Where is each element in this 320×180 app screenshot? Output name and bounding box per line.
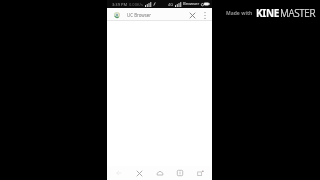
button[interactable]: Stop xyxy=(131,166,147,180)
staticText: Made with xyxy=(226,10,253,17)
staticText: 0.00K/s xyxy=(129,2,143,7)
button[interactable]: More options xyxy=(200,10,210,20)
staticText: MASTER xyxy=(280,6,316,20)
staticText: UC Browser xyxy=(127,12,152,18)
staticText: 4G xyxy=(168,2,174,7)
button[interactable]: Tabs xyxy=(172,166,188,180)
staticText: 3:39 PM xyxy=(112,2,128,7)
staticText: Browser xyxy=(183,1,200,7)
button[interactable]: Close xyxy=(187,10,197,20)
staticText: KINE xyxy=(256,6,280,20)
button[interactable]: Home xyxy=(152,166,168,180)
button[interactable]: Chrome xyxy=(112,10,121,19)
button[interactable]: Menu xyxy=(192,166,208,180)
